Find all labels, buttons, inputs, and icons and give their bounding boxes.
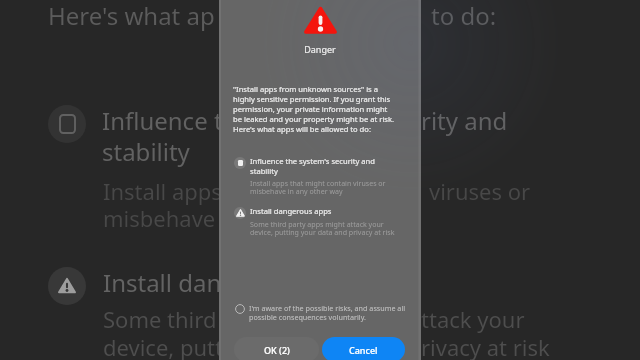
staticText: stability [102, 135, 190, 168]
button[interactable]: Influence the system's security and stab… [231, 156, 411, 202]
staticText: ttack your [421, 304, 525, 334]
staticText: Some third party apps might attack your … [250, 219, 395, 237]
staticText: rity and [421, 104, 508, 137]
button[interactable]: Install dangerous apps [231, 206, 411, 242]
staticText: to do: [431, 0, 497, 32]
staticText: rivacy at risk [421, 332, 550, 360]
staticText: Some third [103, 304, 217, 334]
staticText: Install apps that might contain viruses … [250, 178, 386, 196]
staticText: I'm aware of the possible risks, and ass… [249, 303, 406, 322]
staticText: Here's what ap [48, 0, 215, 32]
staticText: Cancel [349, 344, 378, 356]
button[interactable]: Cancel [322, 337, 405, 360]
staticText: misbehave [103, 203, 216, 233]
staticText: OK (2) [264, 344, 290, 356]
button[interactable]: I'm aware of the possible risks, and ass… [231, 300, 411, 322]
staticText: Danger [219, 43, 421, 55]
staticText: viruses or [429, 176, 531, 206]
staticText: Install dangerous apps [250, 206, 332, 216]
staticText: Influence the system's security and stab… [250, 156, 375, 176]
staticText: device, putt [103, 332, 223, 360]
staticText: Install dan [103, 266, 222, 299]
staticText: Install apps [103, 176, 222, 206]
staticText: "Install apps from unknown sources" is a… [233, 84, 395, 134]
button[interactable]: OK (2) [234, 337, 319, 360]
staticText: Influence t [102, 104, 223, 137]
